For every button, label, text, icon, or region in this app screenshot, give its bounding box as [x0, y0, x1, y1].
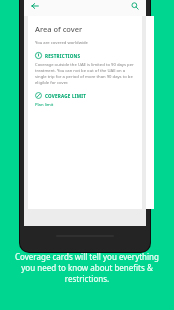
button[interactable]: Search — [127, 0, 142, 13]
staticText: You are covered worldwide — [35, 40, 88, 46]
staticText: RESTRICTIONS — [45, 53, 81, 59]
staticText: COVERAGE LIMIT — [45, 93, 87, 99]
staticText: Coverage outside the UAE is limited to 9… — [35, 62, 136, 86]
staticText: Plan limit — [35, 102, 54, 108]
button[interactable]: Area of cover — [28, 16, 142, 209]
staticText: Coverage cards will tell you everything … — [13, 251, 161, 284]
staticText: Area of cover — [35, 24, 83, 34]
button[interactable]: Back — [27, 0, 42, 13]
